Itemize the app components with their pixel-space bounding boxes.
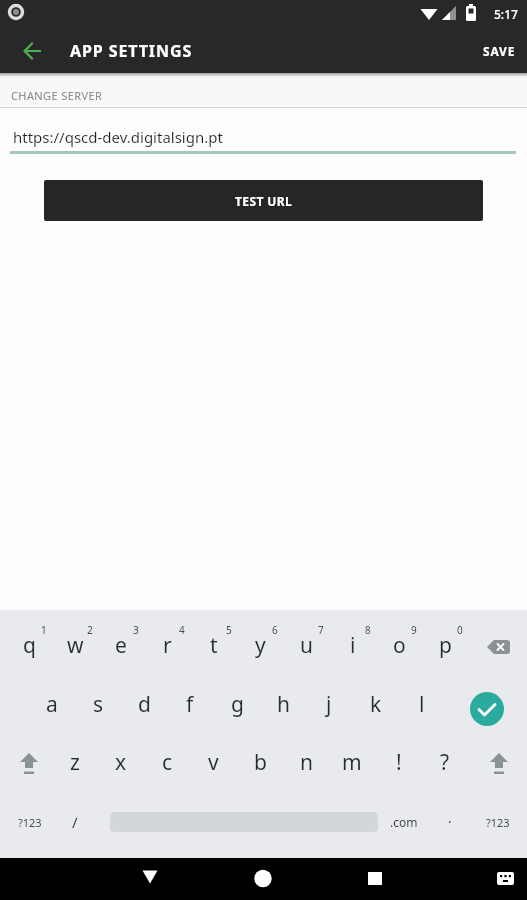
button[interactable]: b (236, 746, 284, 778)
staticText: y (255, 631, 266, 660)
staticText: u (300, 631, 313, 660)
staticText: 2 (87, 623, 93, 637)
button[interactable]: l (398, 688, 446, 720)
staticText: x (115, 748, 127, 777)
staticText: 7 (318, 623, 324, 637)
staticText: e (115, 631, 127, 660)
staticText: g (231, 690, 244, 719)
button[interactable]: TEST URL (44, 180, 483, 221)
staticText: ?123 (18, 815, 42, 830)
staticText: v (208, 748, 219, 777)
staticText: h (277, 690, 290, 719)
button[interactable]: ? (421, 746, 469, 778)
staticText: b (254, 748, 267, 777)
button[interactable]: 3 (112, 614, 160, 646)
button[interactable]: r (143, 629, 191, 661)
button[interactable]: h (259, 688, 307, 720)
button[interactable]: k (352, 688, 400, 720)
button[interactable]: ?123 (474, 806, 522, 838)
staticText: j (326, 690, 332, 719)
button[interactable]: SAVE (477, 33, 521, 69)
staticText: z (70, 748, 80, 777)
staticText: TEST URL (235, 193, 293, 209)
staticText: 1 (41, 623, 47, 637)
staticText: CHANGE SERVER (11, 88, 103, 103)
staticText: ! (396, 748, 402, 777)
staticText: c (162, 748, 173, 777)
button[interactable]: 8 (344, 614, 392, 646)
button[interactable]: o (375, 629, 423, 661)
button[interactable]: f (166, 688, 214, 720)
button[interactable] (175, 858, 351, 900)
staticText: r (163, 631, 172, 660)
button[interactable]: z (51, 746, 99, 778)
staticText: ?123 (486, 815, 510, 830)
staticText: 5 (226, 623, 232, 637)
staticText: 6 (272, 623, 278, 637)
staticText: p (439, 631, 452, 660)
button[interactable]: d (120, 688, 168, 720)
button[interactable] (0, 858, 175, 900)
staticText: SAVE (483, 43, 516, 59)
staticText: 4 (179, 623, 185, 637)
button[interactable] (14, 33, 50, 69)
staticText: m (342, 748, 362, 777)
staticText: 3 (133, 623, 139, 637)
button[interactable]: v (189, 746, 237, 778)
button[interactable]: p (421, 629, 469, 661)
button[interactable]: i (329, 629, 377, 661)
button[interactable]: e (97, 629, 145, 661)
staticText: .com (390, 814, 418, 830)
staticText: 5:17 (494, 6, 518, 22)
staticText: q (23, 631, 36, 660)
button[interactable]: 0 (436, 614, 484, 646)
button[interactable]: 4 (158, 614, 206, 646)
button[interactable]: 5 (205, 614, 253, 646)
staticText: k (370, 690, 382, 719)
button[interactable]: 1 (20, 614, 68, 646)
staticText: 9 (411, 623, 417, 637)
staticText: 8 (365, 623, 371, 637)
staticText: ? (440, 748, 450, 777)
button[interactable]: w (51, 629, 99, 661)
button[interactable]: y (236, 629, 284, 661)
staticText: 0 (457, 623, 463, 637)
button[interactable]: n (282, 746, 330, 778)
button[interactable] (351, 858, 527, 900)
button[interactable]: u (282, 629, 330, 661)
button[interactable]: c (143, 746, 191, 778)
staticText: s (93, 690, 104, 719)
button[interactable]: · (426, 806, 474, 838)
button[interactable]: ?123 (6, 806, 54, 838)
button[interactable]: q (5, 629, 53, 661)
button[interactable]: 7 (297, 614, 345, 646)
staticText: l (419, 690, 425, 719)
button[interactable]: .com (380, 806, 428, 838)
staticText: d (138, 690, 151, 719)
staticText: w (67, 631, 84, 660)
button[interactable]: / (51, 806, 99, 838)
button[interactable]: 2 (66, 614, 114, 646)
button[interactable]: s (74, 688, 122, 720)
button[interactable]: x (97, 746, 145, 778)
button[interactable]: https://qscd-dev.digitalsign.pt (13, 127, 223, 147)
staticText: o (393, 631, 406, 660)
button[interactable]: 9 (390, 614, 438, 646)
button[interactable]: m (328, 746, 376, 778)
button[interactable]: a (28, 688, 76, 720)
button[interactable]: g (213, 688, 261, 720)
button[interactable] (470, 692, 504, 726)
staticText: i (350, 631, 356, 660)
staticText: n (300, 748, 313, 777)
button[interactable]: 6 (251, 614, 299, 646)
staticText: f (186, 690, 194, 719)
staticText: t (210, 631, 218, 660)
staticText: / (72, 812, 78, 832)
button[interactable]: t (190, 629, 238, 661)
button[interactable]: j (305, 688, 353, 720)
staticText: a (46, 690, 58, 719)
staticText: APP SETTINGS (70, 40, 193, 62)
staticText: · (448, 813, 452, 831)
button[interactable]: ! (375, 746, 423, 778)
